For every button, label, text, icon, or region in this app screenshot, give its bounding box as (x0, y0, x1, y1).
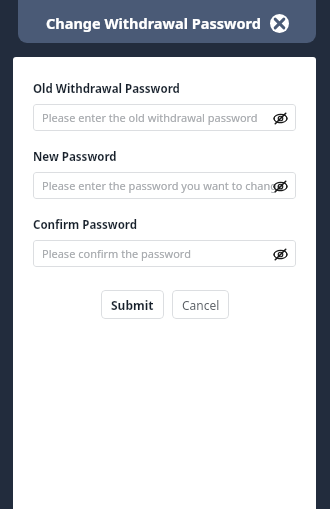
button[interactable]: Show password (271, 245, 289, 263)
staticText: New Password (33, 149, 117, 165)
staticText: Confirm Password (33, 217, 138, 233)
button[interactable]: Please enter the password you want to ch… (33, 172, 296, 199)
button[interactable]: Please enter the old withdrawal password (33, 104, 296, 131)
button[interactable]: Show password (271, 109, 289, 127)
staticText: Please confirm the password (42, 246, 191, 261)
staticText: Cancel (182, 297, 220, 313)
button[interactable]: Show password (271, 177, 289, 195)
staticText: Old Withdrawal Password (33, 81, 180, 97)
staticText: Please enter the old withdrawal password (42, 110, 258, 125)
button[interactable]: Please confirm the password (33, 240, 296, 267)
staticText: Change Withdrawal Password (46, 13, 261, 33)
staticText: Submit (111, 297, 154, 313)
button[interactable]: Cancel (172, 290, 229, 319)
button[interactable]: Submit (101, 290, 164, 319)
staticText: Please enter the password you want to ch… (42, 178, 284, 193)
button[interactable]: Close (269, 13, 289, 33)
